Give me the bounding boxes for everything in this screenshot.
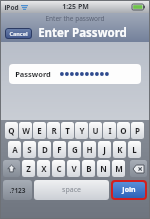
staticText: 1:25 PM <box>62 2 89 12</box>
staticText: H <box>86 144 93 155</box>
button[interactable]: Password <box>9 64 141 84</box>
button[interactable]: Cancel <box>5 28 32 39</box>
staticText: iPod <box>4 3 19 12</box>
button[interactable]: T <box>61 122 74 139</box>
button[interactable]: M <box>112 160 125 177</box>
staticText: T <box>65 125 70 136</box>
staticText: .?123 <box>9 186 26 195</box>
button[interactable]: K <box>113 141 126 158</box>
button[interactable]: Delete <box>130 160 147 177</box>
staticText: D <box>42 144 48 155</box>
button[interactable]: B <box>82 160 95 177</box>
button[interactable]: Join <box>113 182 145 198</box>
button[interactable]: F <box>53 141 66 158</box>
button[interactable]: Y <box>75 122 88 139</box>
staticText: M <box>115 163 123 174</box>
staticText: P <box>135 125 140 136</box>
staticText: Y <box>79 125 85 136</box>
staticText: O <box>120 125 127 136</box>
button[interactable]: E <box>33 122 46 139</box>
button[interactable]: I <box>103 122 116 139</box>
button[interactable]: A <box>8 141 21 158</box>
staticText: L <box>132 144 137 155</box>
button[interactable]: Q <box>5 122 18 139</box>
button[interactable]: J <box>98 141 111 158</box>
staticText: S <box>27 144 32 155</box>
staticText: C <box>56 163 62 174</box>
staticText: Join <box>122 185 136 195</box>
button[interactable]: S <box>23 141 36 158</box>
button[interactable]: .?123 <box>3 180 32 200</box>
button[interactable]: C <box>52 160 65 177</box>
staticText: space <box>62 185 81 195</box>
staticText: A <box>12 144 18 155</box>
staticText: V <box>71 163 77 174</box>
button[interactable]: Shift <box>3 160 20 177</box>
staticText: K <box>117 144 123 155</box>
staticText: Enter the password <box>45 14 105 23</box>
staticText: W <box>22 125 30 136</box>
staticText: G <box>72 144 78 155</box>
button[interactable]: O <box>117 122 130 139</box>
staticText: Z <box>26 163 31 174</box>
staticText: E <box>37 125 42 136</box>
staticText: Enter Password <box>38 25 127 41</box>
button[interactable]: U <box>89 122 102 139</box>
button[interactable]: H <box>83 141 96 158</box>
button[interactable]: L <box>128 141 141 158</box>
button[interactable]: Z <box>22 160 35 177</box>
staticText: F <box>57 144 62 155</box>
button[interactable]: G <box>68 141 81 158</box>
button[interactable]: D <box>38 141 51 158</box>
button[interactable]: V <box>67 160 80 177</box>
staticText: R <box>51 125 57 136</box>
button[interactable]: P <box>131 122 144 139</box>
button[interactable]: W <box>19 122 32 139</box>
staticText: J <box>103 144 106 155</box>
staticText: Cancel <box>9 30 28 37</box>
staticText: B <box>86 163 92 174</box>
staticText: N <box>100 163 107 174</box>
staticText: X <box>41 163 47 174</box>
button[interactable]: space <box>34 180 109 200</box>
button[interactable]: R <box>47 122 60 139</box>
staticText: I <box>108 125 112 136</box>
button[interactable]: X <box>37 160 50 177</box>
staticText: Q <box>8 125 15 136</box>
button[interactable]: N <box>97 160 110 177</box>
staticText: U <box>92 125 99 136</box>
staticText: Password <box>15 69 51 79</box>
